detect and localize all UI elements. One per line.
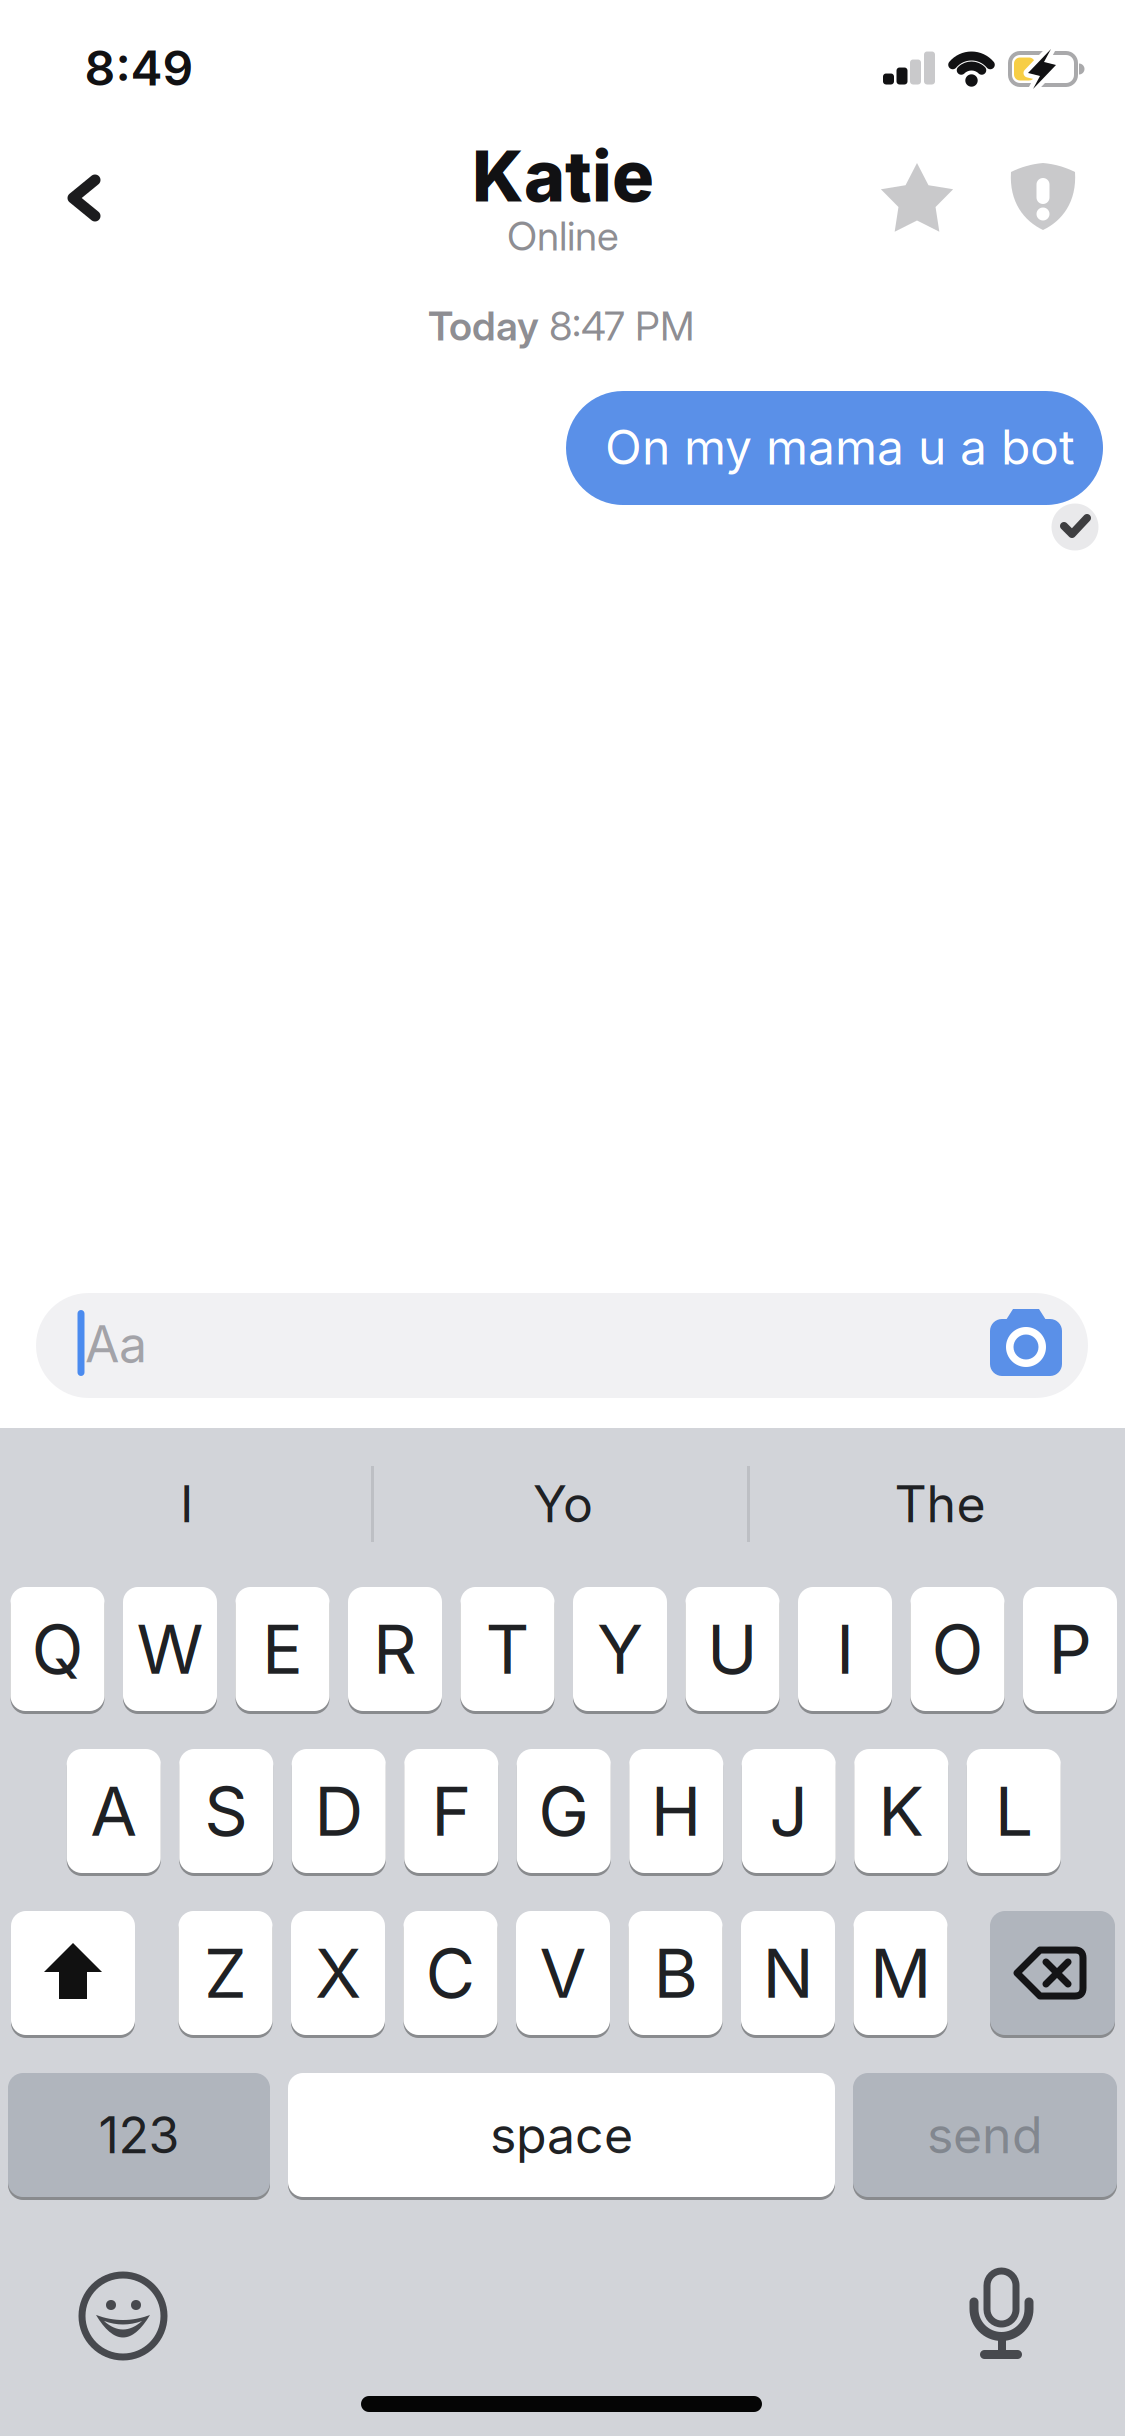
staticText: I [180,1474,193,1534]
staticText: K [878,1770,924,1852]
staticText: W [136,1608,203,1690]
staticText: H [651,1770,702,1852]
staticText: Katie [472,134,654,218]
staticText: O [931,1608,983,1690]
staticText: send [927,2105,1043,2165]
staticText: 123 [98,2105,179,2165]
staticText: Online [507,212,619,260]
staticText: E [262,1608,303,1690]
staticText: X [315,1932,361,2014]
staticText: Aa [85,1314,147,1374]
staticText: 8:47 PM [549,302,694,350]
staticText: M [870,1932,931,2014]
staticText: D [314,1770,363,1852]
staticText: G [538,1770,589,1852]
staticText: Y [597,1608,643,1690]
staticText: N [762,1932,813,2014]
staticText: space [490,2105,633,2165]
staticText: On my mama u a bot [605,418,1075,476]
staticText: S [204,1770,248,1852]
staticText: U [707,1608,758,1690]
staticText: C [425,1932,475,2014]
staticText: L [995,1770,1033,1852]
staticText: A [90,1770,137,1852]
staticText: Yo [533,1474,593,1534]
staticText: Today [428,302,539,350]
staticText: Z [204,1932,247,2014]
staticText: T [485,1608,529,1690]
staticText: F [431,1770,471,1852]
staticText: I [836,1608,854,1690]
staticText: V [539,1932,586,2014]
staticText: Q [31,1608,83,1690]
staticText: B [653,1932,697,2014]
staticText: R [373,1608,417,1690]
staticText: 8:49 [84,39,193,97]
staticText: The [894,1474,985,1534]
staticText: P [1048,1608,1091,1690]
staticText: J [769,1770,808,1852]
